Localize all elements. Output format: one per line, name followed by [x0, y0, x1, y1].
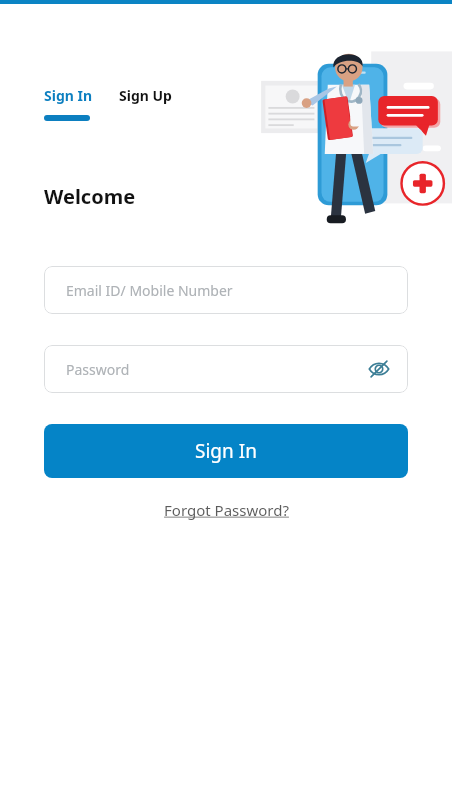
button[interactable]: Password — [44, 345, 408, 393]
staticText: Sign In — [195, 438, 257, 464]
staticText: Sign Up — [119, 86, 172, 105]
staticText: Welcome — [44, 183, 136, 210]
button[interactable]: Show password — [364, 354, 394, 384]
button[interactable]: Sign Up — [119, 86, 172, 105]
button[interactable]: Forgot Password? — [158, 496, 295, 524]
button[interactable]: Email ID/ Mobile Number — [44, 266, 408, 314]
staticText: Forgot Password? — [164, 500, 289, 520]
staticText: Password — [66, 360, 130, 379]
button[interactable]: Sign In — [44, 424, 408, 478]
staticText: Email ID/ Mobile Number — [66, 281, 233, 300]
staticText: Sign In — [44, 86, 93, 105]
button[interactable]: Sign In — [44, 86, 93, 105]
